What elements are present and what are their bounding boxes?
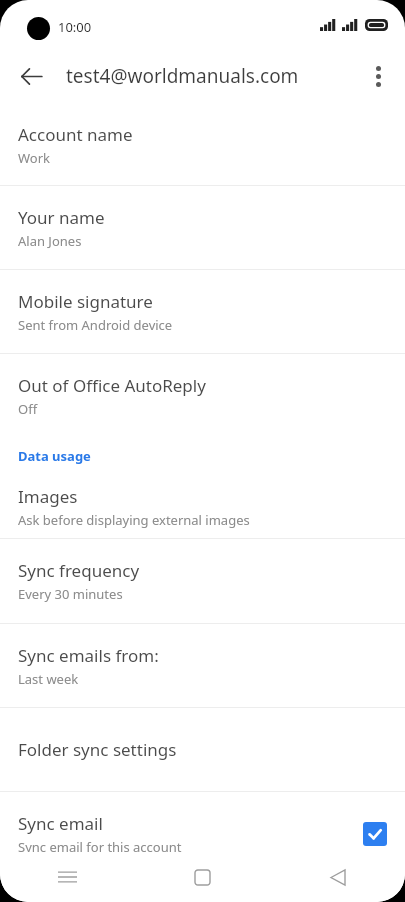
staticText: Mobile signature [18,290,153,313]
staticText: Account name [18,123,133,146]
button[interactable]: Back [10,55,52,97]
button[interactable]: Sync email [0,792,405,875]
staticText: Your name [18,206,105,229]
staticText: Sent from Android device [18,316,173,334]
staticText: Sync emails from: [18,644,159,667]
staticText: Sync frequency [18,559,140,582]
staticText: Data usage [18,447,91,465]
staticText: Images [18,485,78,508]
staticText: test4@worldmanuals.com [66,63,299,89]
button[interactable]: Images [0,475,405,538]
button[interactable]: Your name [0,186,405,269]
staticText: 10:00 [58,18,92,36]
staticText: Sync email for this account [18,838,182,856]
button[interactable]: Sync frequency [0,539,405,623]
button[interactable]: More options [357,55,399,97]
staticText: Out of Office AutoReply [18,374,206,397]
staticText: Folder sync settings [18,738,177,761]
staticText: Every 30 minutes [18,585,123,603]
button[interactable]: Home [135,852,270,902]
button[interactable]: Recent apps [0,852,135,902]
button[interactable]: Mobile signature [0,270,405,353]
button[interactable]: Out of Office AutoReply [0,354,405,437]
staticText: Sync email [18,812,103,835]
staticText: Work [18,149,51,167]
staticText: Last week [18,670,79,688]
staticText: Ask before displaying external images [18,511,250,529]
staticText: Alan Jones [18,232,82,250]
button[interactable]: Back [270,852,405,902]
staticText: Off [18,400,38,418]
button[interactable]: Folder sync settings [0,708,405,791]
button[interactable]: Account name [0,104,405,185]
button[interactable]: Sync emails from: [0,624,405,707]
button[interactable]: Sync email toggle [363,822,387,846]
